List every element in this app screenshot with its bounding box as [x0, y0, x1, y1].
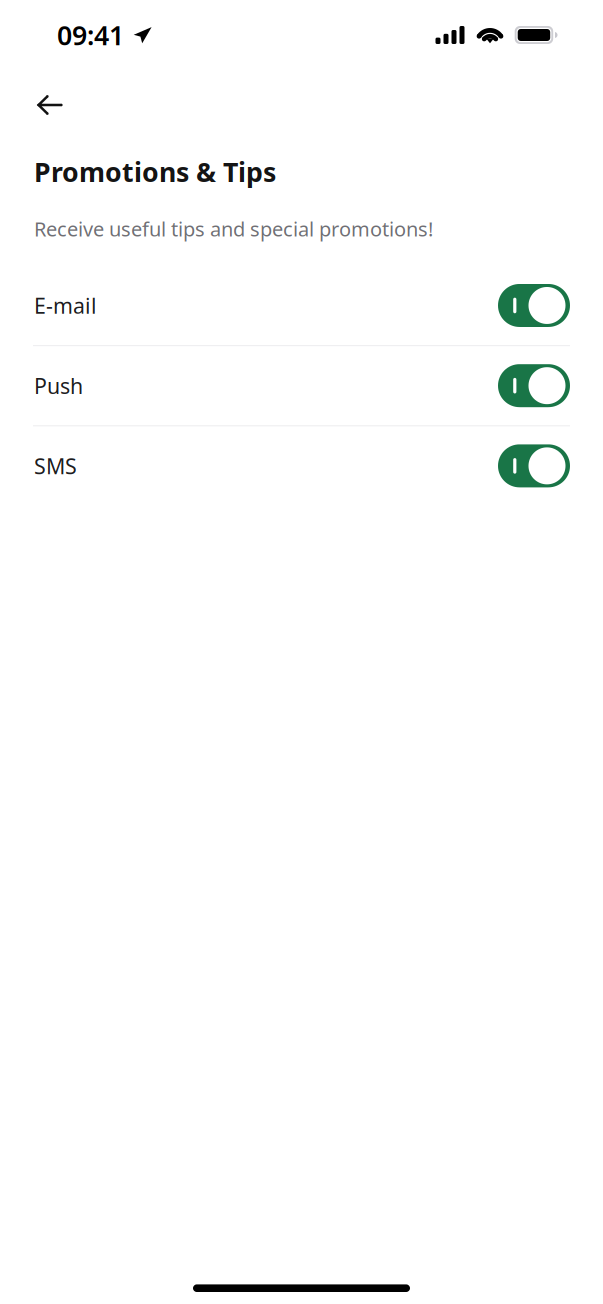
staticText: Receive useful tips and special promotio…	[34, 215, 433, 242]
button[interactable]: Push	[0, 346, 603, 425]
button[interactable]: SMS	[0, 426, 603, 505]
staticText: SMS	[34, 452, 77, 480]
staticText: E-mail	[34, 291, 97, 320]
button[interactable]: On	[498, 364, 570, 407]
staticText: Promotions & Tips	[34, 154, 276, 189]
button[interactable]: On	[498, 444, 570, 487]
button[interactable]: On	[498, 284, 570, 327]
button[interactable]: Back	[0, 83, 85, 127]
staticText: 09:41	[57, 17, 124, 53]
staticText: Push	[34, 371, 83, 400]
button[interactable]: E-mail	[0, 266, 603, 345]
